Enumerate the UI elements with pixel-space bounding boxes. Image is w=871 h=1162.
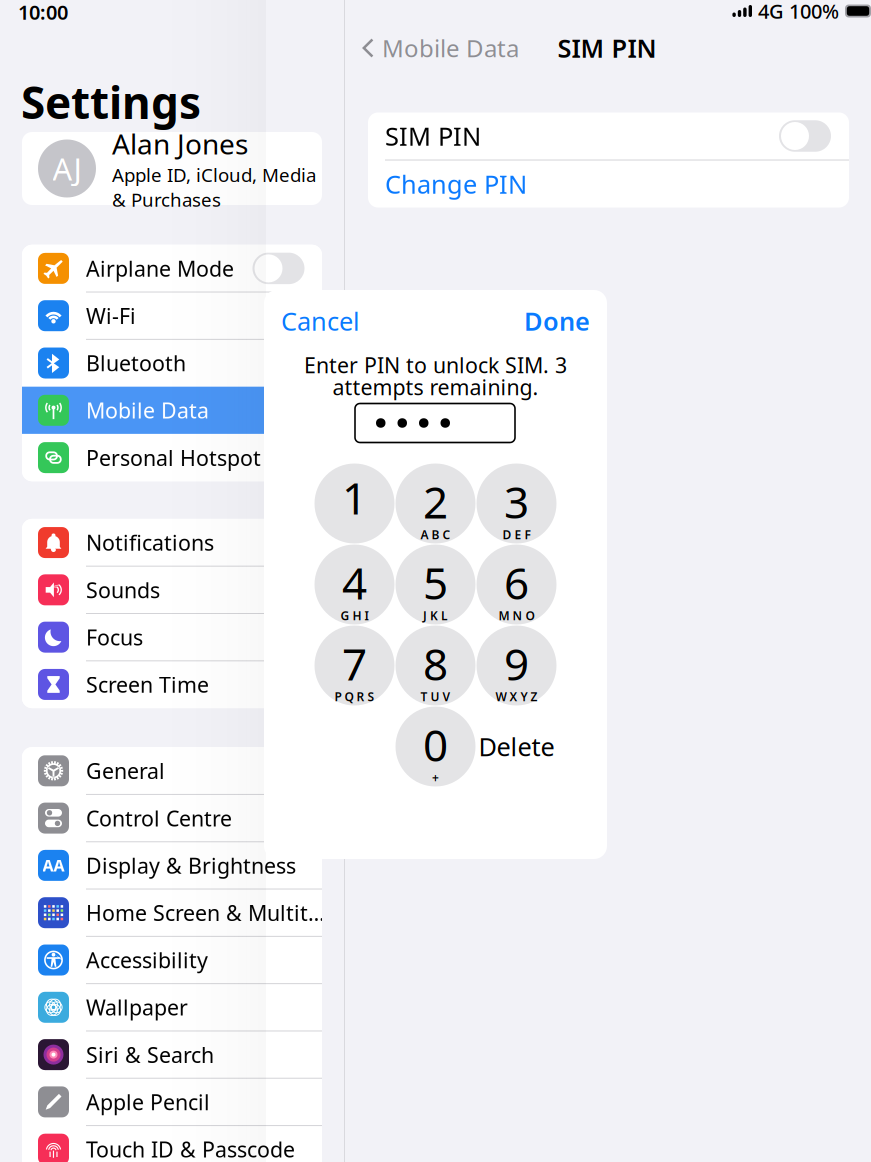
- staticText: Apple ID, iCloud, Media: [112, 162, 316, 187]
- button[interactable]: Siri & Search: [22, 1031, 322, 1078]
- staticText: D E F: [502, 527, 530, 543]
- staticText: 7: [342, 634, 367, 693]
- staticText: 9: [504, 634, 529, 693]
- staticText: 0: [423, 715, 448, 774]
- staticText: Wallpaper: [86, 993, 188, 1021]
- staticText: SIM PIN: [385, 119, 481, 153]
- button[interactable]: Touch ID & Passcode: [22, 1125, 322, 1162]
- staticText: 5: [423, 553, 448, 612]
- staticText: Notifications: [86, 528, 214, 557]
- staticText: Cancel: [281, 304, 360, 338]
- staticText: Focus: [86, 623, 143, 651]
- button[interactable]: SIM PIN: [368, 112, 849, 159]
- staticText: attempts remaining.: [332, 373, 538, 401]
- staticText: Display & Brightness: [86, 851, 296, 879]
- button[interactable]: Home Screen & Multitas...: [22, 889, 322, 936]
- staticText: 8: [423, 634, 448, 693]
- staticText: 4G 100%: [758, 0, 839, 24]
- staticText: 6: [504, 553, 529, 612]
- button[interactable]: 1: [314, 463, 395, 544]
- staticText: J K L: [423, 608, 448, 624]
- button[interactable]: 6: [476, 544, 557, 625]
- staticText: +: [432, 770, 439, 786]
- staticText: 3: [504, 472, 529, 531]
- staticText: 4: [342, 553, 367, 612]
- staticText: Accessibility: [86, 946, 208, 974]
- button[interactable]: Focus: [22, 613, 322, 661]
- button[interactable]: Mobile Data: [360, 33, 540, 63]
- staticText: Done: [524, 304, 590, 338]
- staticText: Airplane Mode: [86, 254, 234, 282]
- staticText: Control Centre: [86, 804, 232, 832]
- button[interactable]: Bluetooth: [22, 339, 322, 387]
- staticText: Mobile Data: [382, 32, 519, 64]
- staticText: W X Y Z: [495, 689, 537, 705]
- staticText: Wi-Fi: [86, 301, 136, 330]
- button[interactable]: Delete: [476, 706, 557, 787]
- staticText: Settings: [21, 73, 201, 131]
- button[interactable]: 8: [395, 625, 476, 706]
- staticText: A B C: [420, 527, 450, 543]
- staticText: AA: [42, 855, 64, 876]
- button[interactable]: Mobile Data: [22, 387, 322, 434]
- button[interactable]: 2: [395, 463, 476, 544]
- staticText: 10:00: [18, 0, 68, 25]
- button[interactable]: General: [22, 747, 322, 794]
- staticText: SIM PIN: [557, 31, 656, 65]
- button[interactable]: Done: [500, 306, 590, 336]
- button[interactable]: AA: [22, 842, 322, 889]
- button[interactable]: 0: [395, 706, 476, 787]
- staticText: Home Screen & Multitas...: [86, 898, 326, 927]
- staticText: 2: [423, 472, 448, 531]
- button[interactable]: 9: [476, 625, 557, 706]
- button[interactable]: Wi-Fi: [22, 292, 322, 339]
- button[interactable]: Change PIN: [368, 160, 849, 207]
- staticText: G H I: [340, 608, 368, 624]
- button[interactable]: Control Centre: [22, 794, 322, 842]
- button[interactable]: Apple Pencil: [22, 1078, 322, 1125]
- staticText: Siri & Search: [86, 1040, 214, 1069]
- button[interactable]: Notifications: [22, 519, 322, 566]
- button[interactable]: Cancel: [281, 306, 381, 336]
- staticText: & Purchases: [112, 187, 221, 212]
- staticText: Mobile Data: [86, 396, 209, 424]
- button[interactable]: Sounds: [22, 566, 322, 613]
- staticText: Touch ID & Passcode: [86, 1135, 295, 1162]
- staticText: 1: [342, 468, 367, 527]
- button[interactable]: 4: [314, 544, 395, 625]
- staticText: P Q R S: [334, 689, 374, 705]
- button[interactable]: 7: [314, 625, 395, 706]
- button[interactable]: 3: [476, 463, 557, 544]
- button[interactable]: Screen Time: [22, 661, 322, 708]
- button[interactable]: Personal Hotspot: [22, 434, 322, 481]
- staticText: Alan Jones: [112, 125, 248, 162]
- staticText: AJ: [52, 148, 81, 189]
- button[interactable]: Accessibility: [22, 936, 322, 984]
- button[interactable]: 5: [395, 544, 476, 625]
- staticText: Bluetooth: [86, 349, 186, 377]
- button[interactable]: Wallpaper: [22, 984, 322, 1031]
- staticText: Change PIN: [385, 167, 527, 201]
- staticText: M N O: [498, 608, 534, 624]
- staticText: Screen Time: [86, 670, 209, 699]
- staticText: Personal Hotspot: [86, 443, 261, 472]
- staticText: General: [86, 757, 165, 785]
- staticText: Enter PIN to unlock SIM. 3: [304, 351, 567, 379]
- staticText: Apple Pencil: [86, 1088, 210, 1116]
- button[interactable]: Airplane Mode: [22, 245, 322, 292]
- button[interactable]: AJ: [22, 132, 322, 205]
- staticText: Delete: [478, 730, 554, 763]
- staticText: T U V: [420, 689, 450, 705]
- staticText: Sounds: [86, 576, 160, 604]
